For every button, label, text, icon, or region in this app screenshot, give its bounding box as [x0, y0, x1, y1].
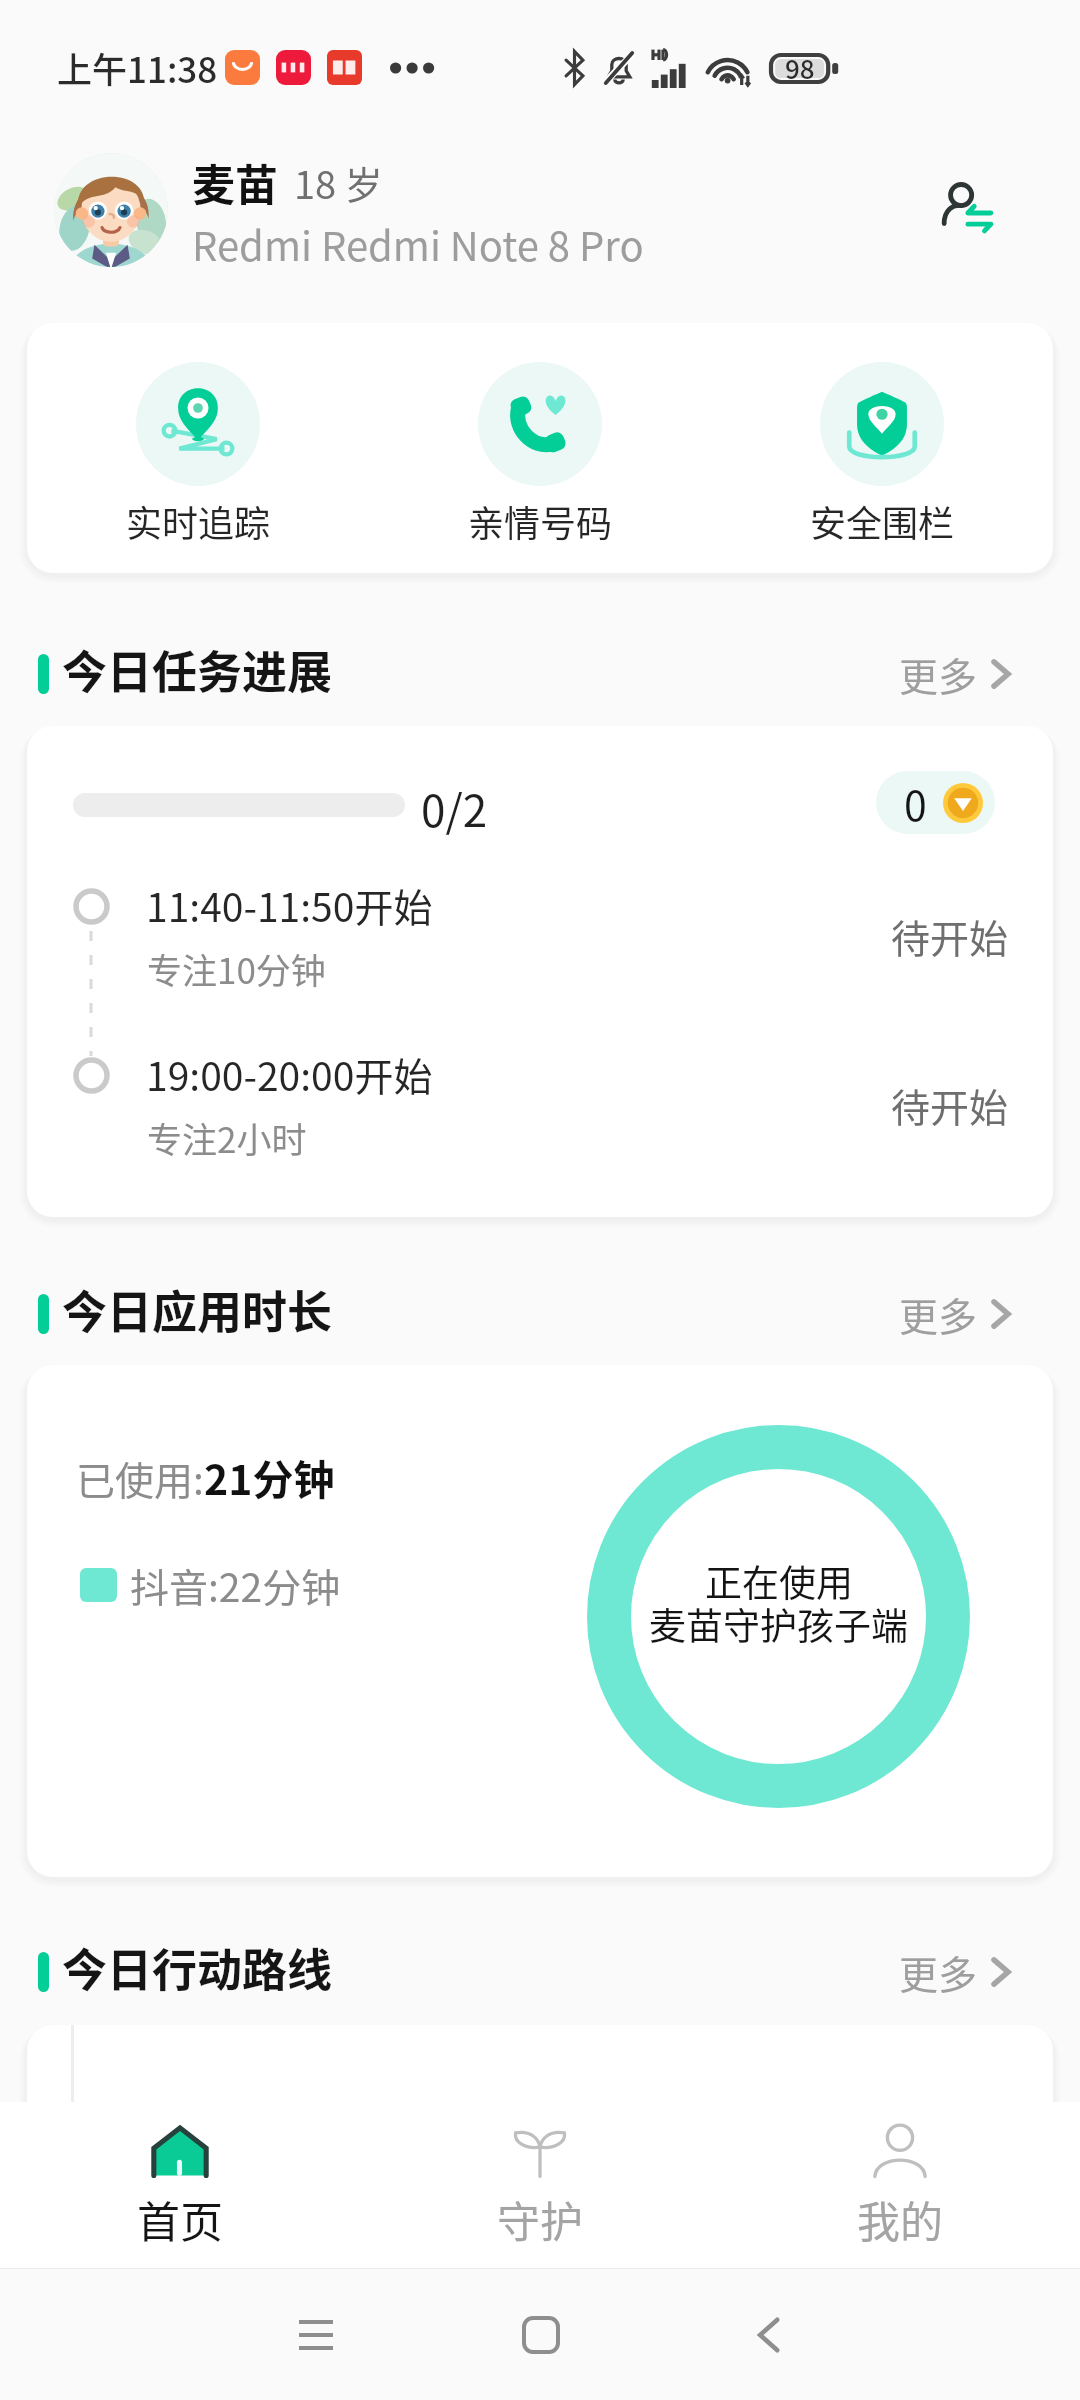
- staticText: 今日行动路线: [62, 1935, 333, 2000]
- staticText: 更多: [899, 1286, 978, 1342]
- staticText: 0: [904, 773, 927, 832]
- staticText: 已使用:: [76, 1450, 204, 1506]
- button[interactable]: 更多: [899, 646, 1012, 702]
- staticText: 首页: [137, 2188, 223, 2250]
- staticText: 19:00-20:00开始: [146, 1046, 433, 1102]
- staticText: 麦苗: [192, 151, 278, 213]
- staticText: 98: [785, 49, 815, 87]
- button[interactable]: 主页: [496, 2290, 586, 2380]
- staticText: 亲情号码: [468, 495, 613, 547]
- button[interactable]: 切换孩子: [914, 155, 1014, 255]
- staticText: 21分钟: [204, 1447, 335, 1506]
- staticText: 实时追踪: [126, 495, 271, 547]
- staticText: 上午11:38: [57, 42, 218, 93]
- staticText: 守护: [497, 2188, 583, 2250]
- staticText: 安全围栏: [810, 495, 955, 547]
- button[interactable]: 守护: [360, 2102, 720, 2268]
- staticText: 更多: [899, 1944, 978, 2000]
- staticText: 待开始: [891, 908, 1009, 964]
- button[interactable]: 最近任务: [271, 2290, 361, 2380]
- staticText: 11:40-11:50开始: [146, 877, 433, 933]
- button[interactable]: 0: [904, 771, 983, 834]
- staticText: 0/2: [421, 776, 488, 840]
- staticText: 更多: [899, 646, 978, 702]
- staticText: 抖音:22分钟: [130, 1557, 341, 1613]
- staticText: 专注10分钟: [147, 943, 326, 994]
- staticText: 今日应用时长: [62, 1277, 333, 1342]
- staticText: 待开始: [891, 1077, 1009, 1133]
- button[interactable]: 安全围栏: [711, 323, 1053, 573]
- button[interactable]: 更多: [899, 1286, 1012, 1342]
- button[interactable]: 更多: [899, 1944, 1012, 2000]
- button[interactable]: 首页: [0, 2102, 360, 2268]
- staticText: 18 岁: [294, 155, 383, 210]
- staticText: 专注2小时: [147, 1112, 307, 1163]
- staticText: Redmi Redmi Note 8 Pro: [192, 215, 644, 273]
- staticText: 麦苗守护孩子端: [649, 1597, 908, 1651]
- button[interactable]: 返回: [723, 2290, 813, 2380]
- staticText: 我的: [857, 2188, 943, 2250]
- staticText: 正在使用: [705, 1554, 853, 1608]
- staticText: 今日任务进展: [62, 637, 333, 702]
- button[interactable]: 实时追踪: [27, 323, 369, 573]
- button[interactable]: 我的: [720, 2102, 1080, 2268]
- button[interactable]: 11:40-11:50开始: [27, 871, 1053, 1021]
- button[interactable]: 亲情号码: [369, 323, 711, 573]
- button[interactable]: 19:00-20:00开始: [27, 1040, 1053, 1190]
